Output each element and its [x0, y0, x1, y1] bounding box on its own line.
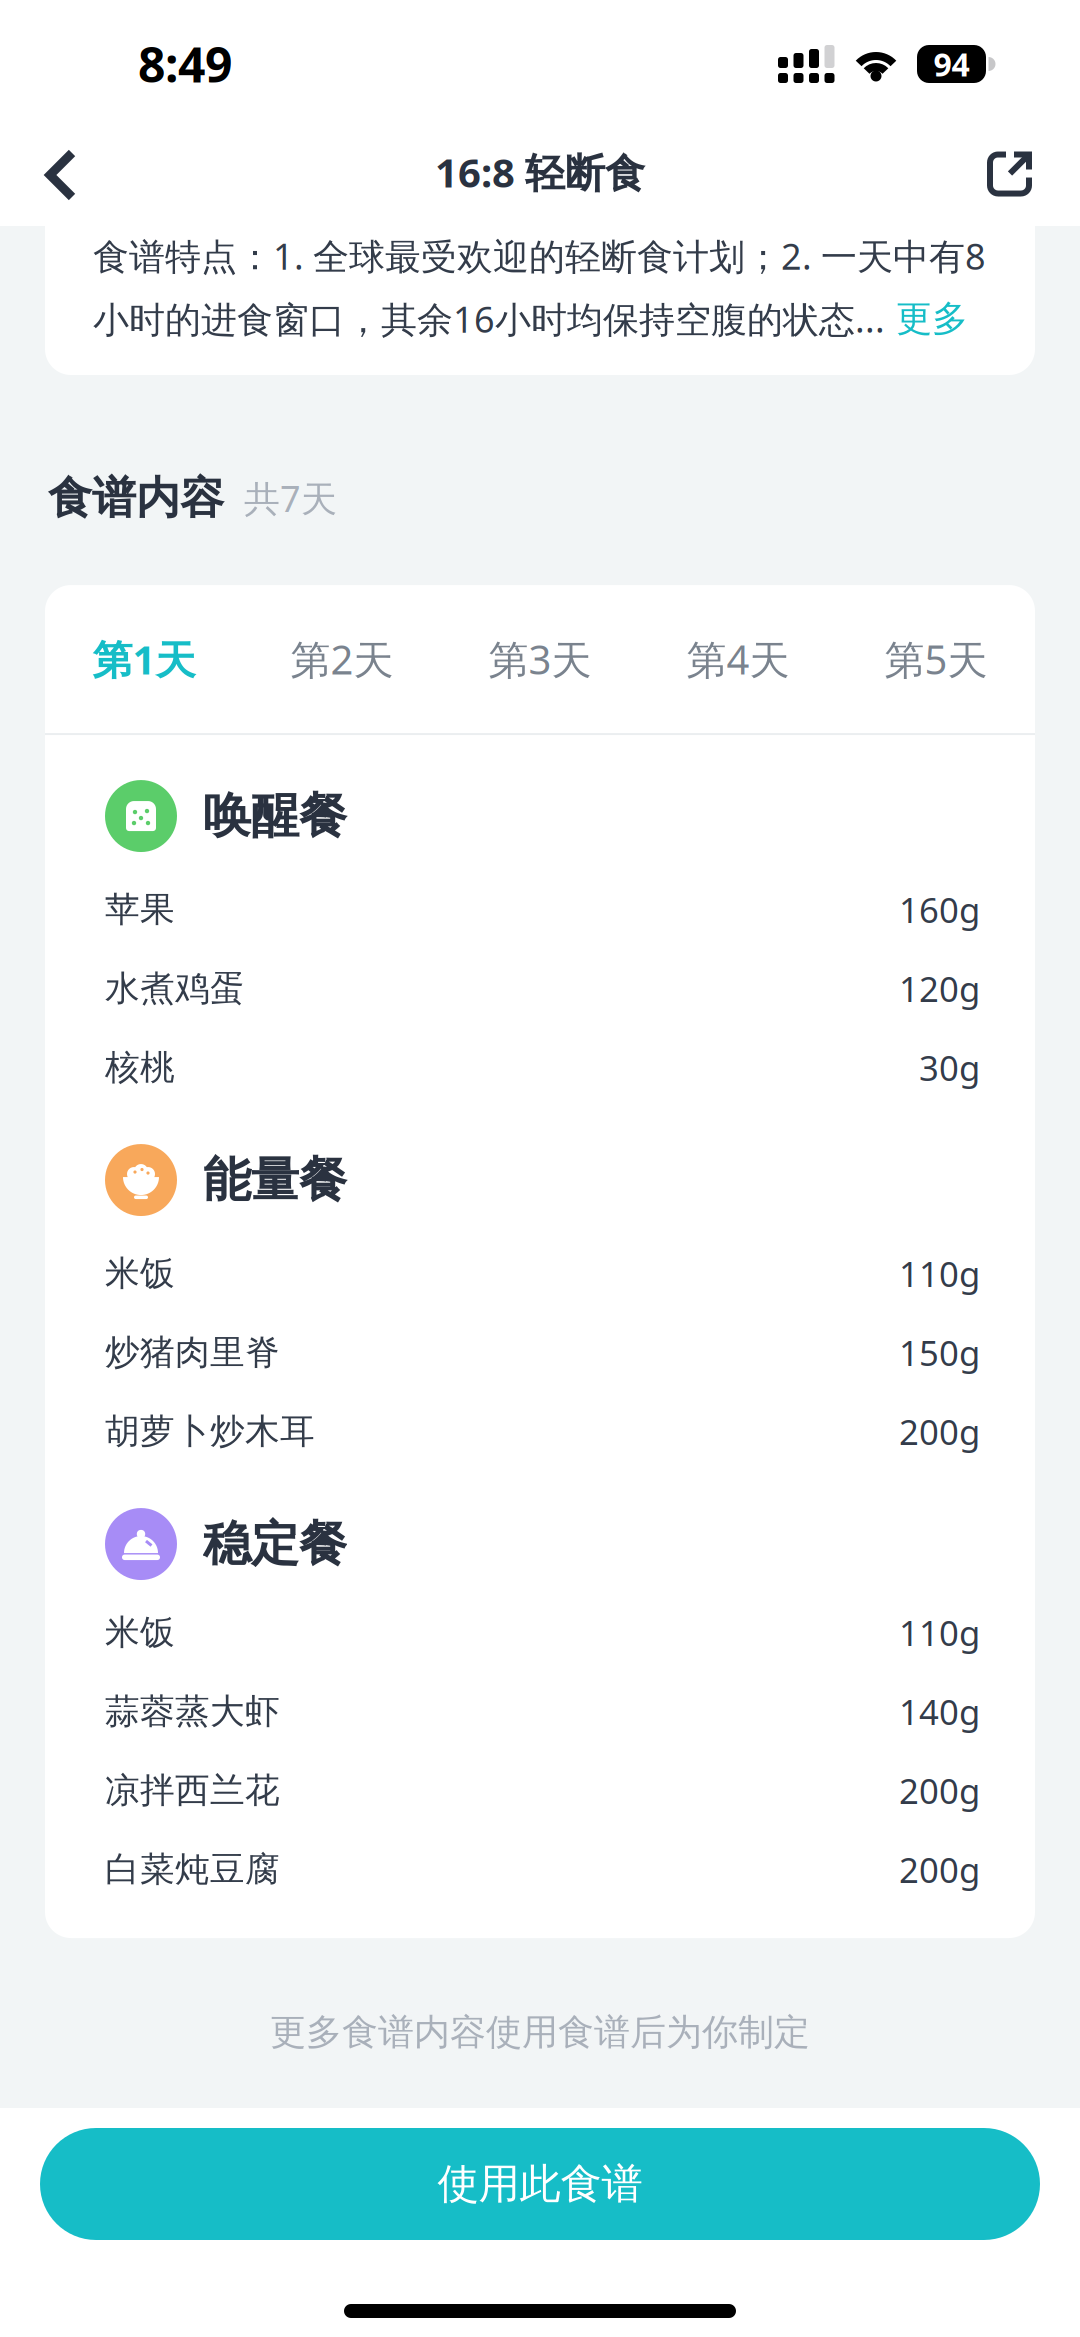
staticText: 能量餐: [203, 1151, 347, 1210]
button[interactable]: 更多: [885, 297, 968, 341]
button[interactable]: 第4天: [639, 585, 837, 733]
staticText: 胡萝卜炒木耳: [105, 1410, 315, 1453]
button[interactable]: 第3天: [441, 585, 639, 733]
staticText: 第5天: [884, 632, 987, 686]
staticText: 更多: [885, 297, 968, 341]
staticText: 小时的进食窗口，其余16小时均保持空腹的状态...: [93, 295, 885, 343]
staticText: 200g: [899, 1408, 980, 1454]
staticText: 第3天: [488, 632, 591, 686]
staticText: 白菜炖豆腐: [105, 1848, 280, 1891]
staticText: 30g: [919, 1044, 980, 1090]
staticText: 160g: [899, 886, 980, 932]
staticText: 凉拌西兰花: [105, 1769, 280, 1812]
staticText: 食谱内容: [48, 471, 224, 525]
staticText: 米饭: [105, 1252, 175, 1295]
button[interactable]: 第5天: [837, 585, 1035, 733]
staticText: 共7天: [244, 474, 337, 522]
staticText: 核桃: [105, 1046, 175, 1089]
staticText: 150g: [899, 1329, 980, 1375]
staticText: 120g: [899, 965, 980, 1011]
staticText: 食谱特点：1. 全球最受欢迎的轻断食计划；2. 一天中有8: [93, 232, 986, 280]
button[interactable]: Back: [0, 114, 77, 222]
staticText: 110g: [899, 1609, 980, 1655]
staticText: 第2天: [290, 632, 393, 686]
staticText: 炒猪肉里脊: [105, 1331, 280, 1374]
staticText: 第1天: [92, 632, 195, 686]
staticText: 200g: [899, 1767, 980, 1813]
staticText: 蒜蓉蒸大虾: [105, 1690, 280, 1733]
staticText: 米饭: [105, 1611, 175, 1654]
button[interactable]: 使用此食谱: [40, 2128, 1040, 2240]
staticText: 稳定餐: [203, 1515, 347, 1574]
button[interactable]: 第1天: [45, 585, 243, 733]
button[interactable]: 第2天: [243, 585, 441, 733]
staticText: 94: [933, 43, 969, 85]
staticText: 水煮鸡蛋: [105, 967, 245, 1010]
staticText: 16:8 轻断食: [435, 145, 645, 198]
staticText: 更多食谱内容使用食谱后为你制定: [270, 2010, 810, 2054]
staticText: 200g: [899, 1846, 980, 1892]
staticText: 苹果: [105, 888, 175, 931]
staticText: 使用此食谱: [437, 2159, 642, 2209]
staticText: 第4天: [686, 632, 789, 686]
staticText: 110g: [899, 1250, 980, 1296]
staticText: 唤醒餐: [203, 787, 347, 846]
staticText: 140g: [899, 1688, 980, 1734]
button[interactable]: Share: [987, 115, 1080, 220]
staticText: 8:49: [138, 32, 232, 96]
